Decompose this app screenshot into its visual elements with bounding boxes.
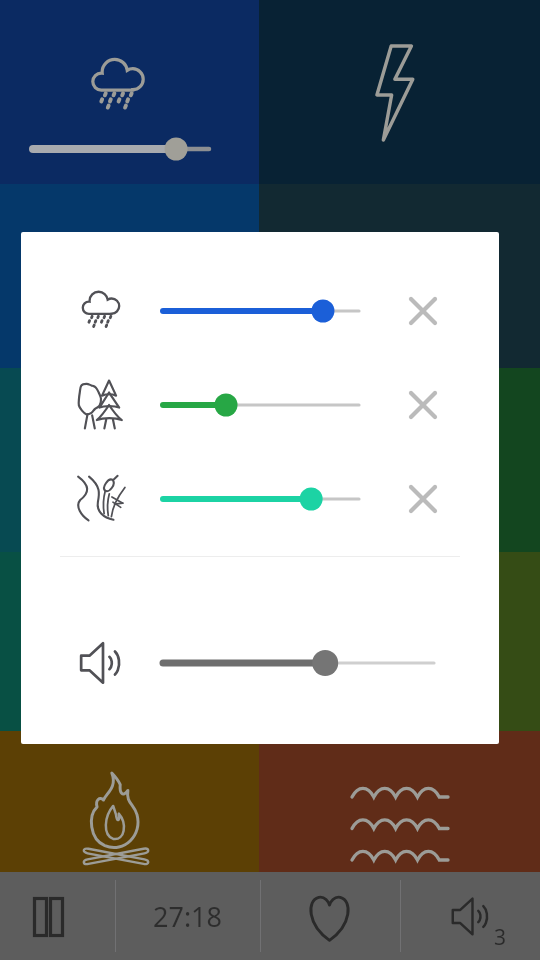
button[interactable]: Volume xyxy=(400,872,540,960)
staticText: 3 xyxy=(494,923,507,952)
button[interactable] xyxy=(259,0,540,184)
button[interactable]: Favorite xyxy=(260,872,400,960)
button[interactable] xyxy=(0,552,259,731)
staticText: 27:18 xyxy=(153,898,223,935)
button[interactable]: 27:18 xyxy=(115,872,260,960)
button[interactable] xyxy=(0,368,259,552)
button[interactable] xyxy=(0,0,259,184)
button[interactable] xyxy=(259,731,540,872)
button[interactable] xyxy=(0,731,259,872)
button[interactable]: Remove sound xyxy=(399,287,447,335)
button[interactable]: Remove sound xyxy=(399,381,447,429)
button[interactable] xyxy=(259,552,540,731)
button[interactable] xyxy=(0,184,259,368)
button[interactable] xyxy=(259,368,540,552)
button[interactable]: Pause xyxy=(0,872,115,960)
button[interactable]: Remove sound xyxy=(399,475,447,523)
button[interactable] xyxy=(259,184,540,368)
